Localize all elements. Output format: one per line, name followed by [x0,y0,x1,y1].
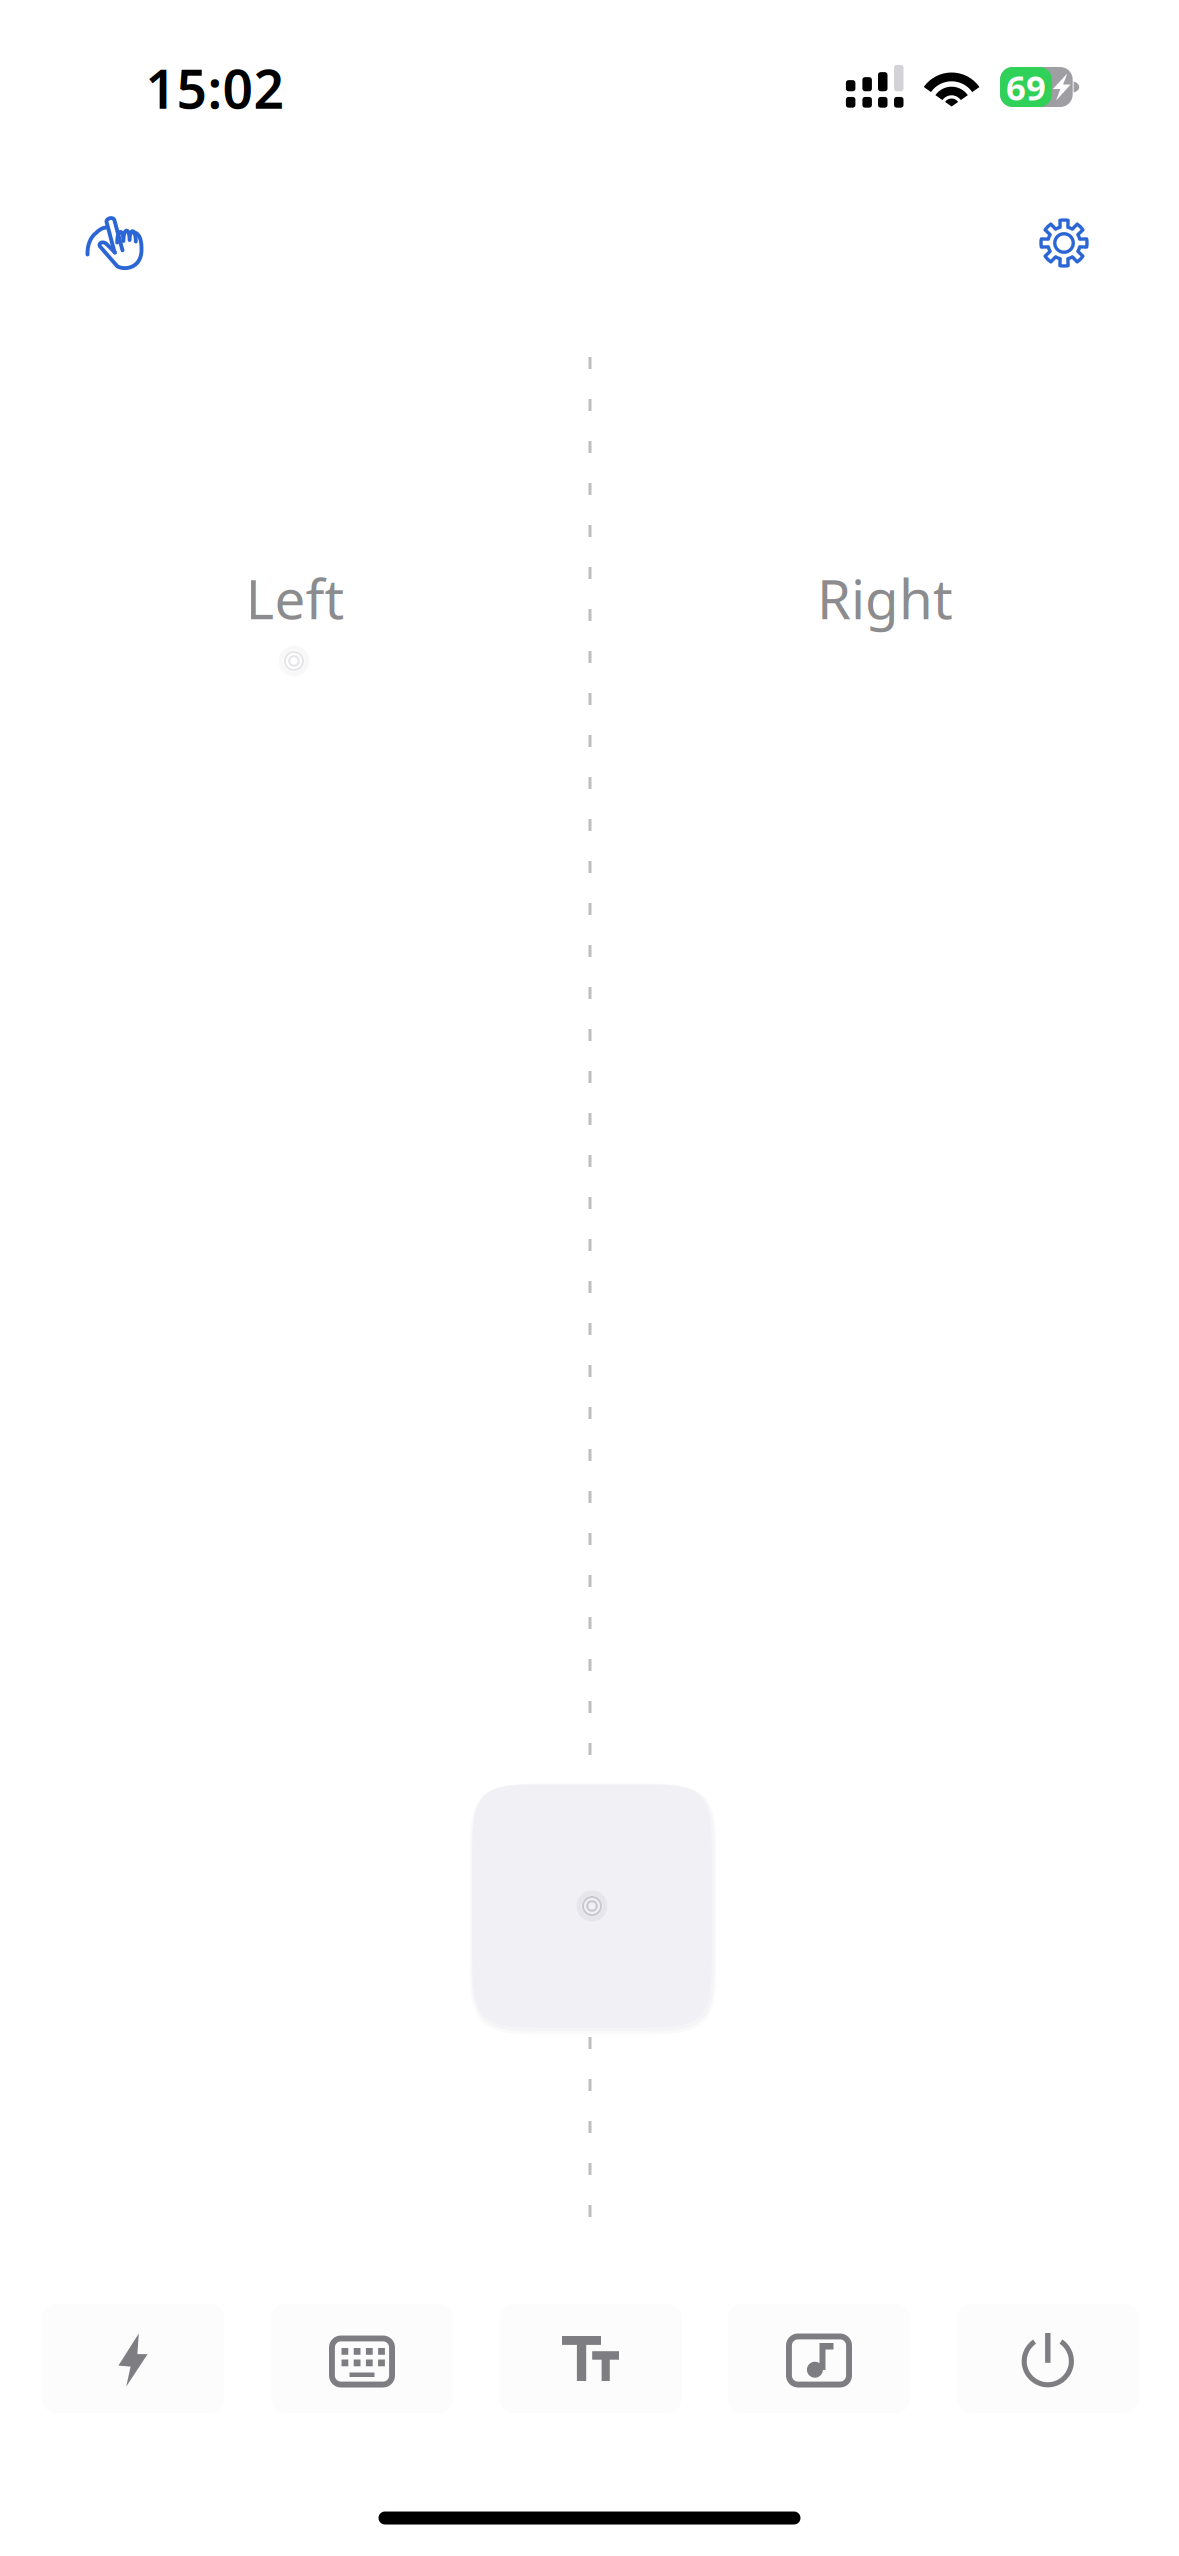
button[interactable]: Keyboard [271,2304,453,2413]
button[interactable]: Settings [1008,187,1120,299]
button[interactable]: Media [728,2304,910,2413]
button[interactable]: Power [957,2304,1139,2413]
staticText: Left [245,562,344,634]
staticText: 15:02 [145,53,284,123]
button[interactable]: Cursor mode [60,190,172,302]
button[interactable]: Shortcuts [42,2304,224,2413]
staticText: 69 [1006,64,1046,110]
button[interactable]: Right [591,357,1179,2217]
button[interactable]: Text size [499,2304,681,2413]
button[interactable]: Middle click [467,1779,716,2032]
staticText: Right [817,562,953,634]
button[interactable]: Left [0,357,588,2217]
